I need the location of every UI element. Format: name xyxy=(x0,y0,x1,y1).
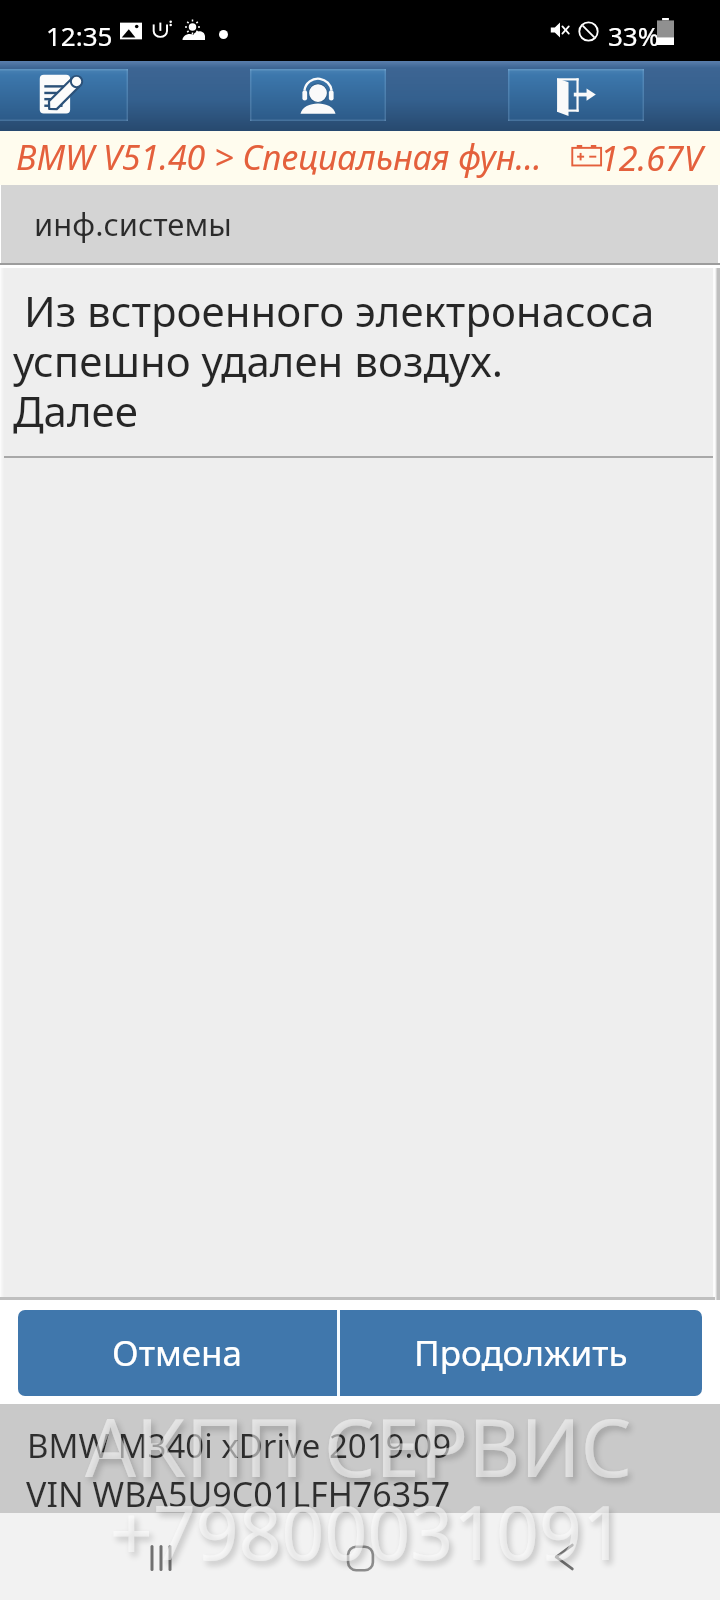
staticText: АКПП СЕРВИС xyxy=(85,1391,632,1500)
button[interactable]: Back xyxy=(551,1544,577,1570)
staticText: Отмена xyxy=(112,1329,243,1377)
staticText: BMW V51.40 > Специальная фун… xyxy=(16,134,542,180)
staticText: VIN WBA5U9C01LFH76357 xyxy=(26,1471,451,1517)
button[interactable]: Home xyxy=(345,1543,376,1574)
staticText: BMW M340i xDrive 2019.09 xyxy=(27,1423,452,1468)
staticText: Продолжить xyxy=(414,1329,628,1377)
staticText: Из встроенного электронасоса успешно уда… xyxy=(13,282,663,440)
button[interactable]: Exit xyxy=(508,69,644,121)
staticText: инф.системы xyxy=(34,203,232,245)
button[interactable]: Отмена xyxy=(18,1310,337,1396)
staticText: +79800031091 xyxy=(110,1480,625,1582)
button[interactable]: Notes xyxy=(0,69,128,121)
staticText: 12:35 xyxy=(46,18,113,53)
staticText: 12.67V xyxy=(600,135,703,181)
button[interactable]: Support xyxy=(250,69,386,121)
button[interactable]: Продолжить xyxy=(340,1310,702,1396)
button[interactable]: Recents xyxy=(146,1543,176,1573)
staticText: 33% xyxy=(608,18,660,53)
